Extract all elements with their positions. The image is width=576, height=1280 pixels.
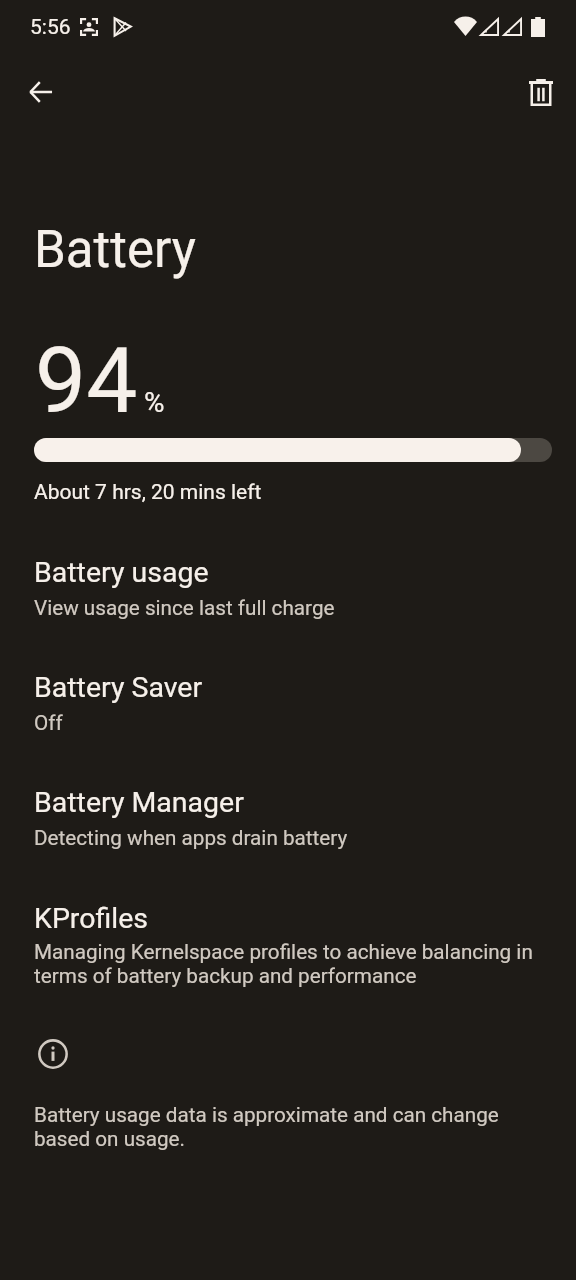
staticText: Battery Manager (34, 786, 244, 819)
staticText: KProfiles (34, 902, 149, 935)
staticText: Battery usage (34, 556, 209, 589)
button[interactable]: Delete (517, 68, 565, 116)
button[interactable]: Battery Saver (0, 655, 576, 751)
button[interactable]: Back (17, 68, 65, 116)
staticText: Off (34, 711, 63, 735)
staticText: Battery Saver (34, 671, 203, 704)
staticText: 5:56 (30, 15, 71, 40)
staticText: View usage since last full charge (34, 596, 335, 620)
button[interactable]: Battery Manager (0, 770, 576, 866)
staticText: % (144, 386, 165, 419)
button[interactable]: KProfiles (0, 886, 576, 1004)
staticText: Battery (34, 220, 196, 280)
staticText: Detecting when apps drain battery (34, 826, 348, 850)
staticText: 94 (35, 328, 138, 435)
staticText: Managing Kernelspace profiles to achieve… (34, 940, 554, 988)
staticText: About 7 hrs, 20 mins left (34, 480, 262, 505)
staticText: Battery usage data is approximate and ca… (34, 1103, 534, 1151)
button[interactable]: Battery usage (0, 540, 576, 636)
